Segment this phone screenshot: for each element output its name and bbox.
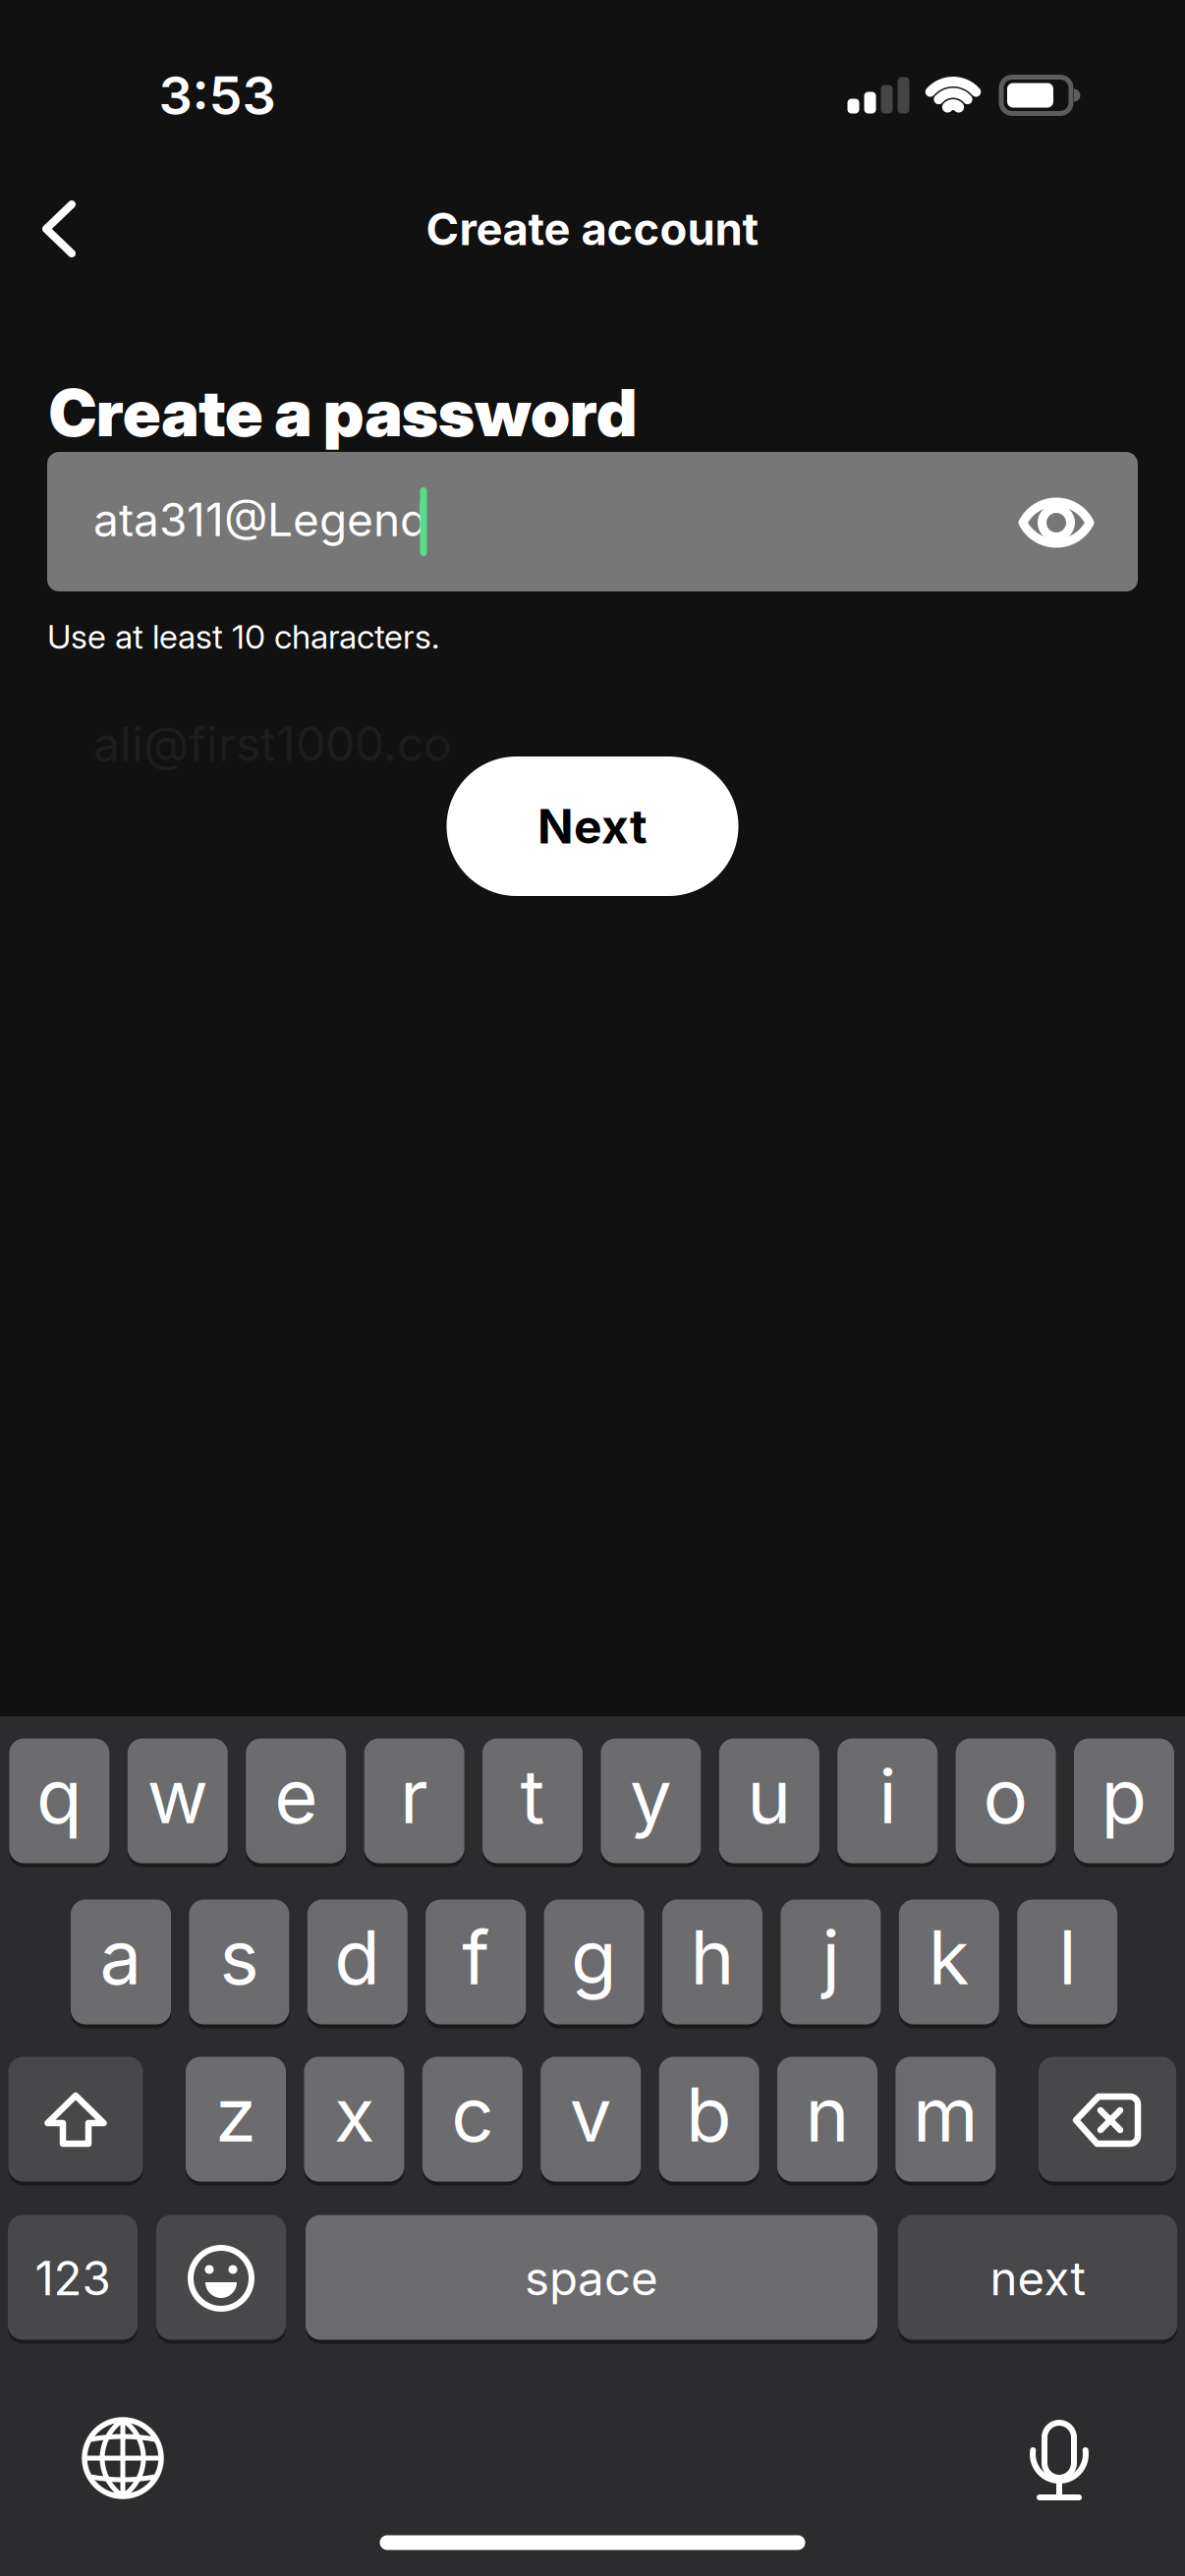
- button[interactable]: t: [482, 1738, 583, 1866]
- staticText: j: [822, 1912, 840, 2002]
- button[interactable]: b: [659, 2056, 759, 2184]
- button[interactable]: Delete: [1039, 2056, 1176, 2184]
- staticText: 123: [35, 2250, 111, 2307]
- button[interactable]: d: [307, 1899, 408, 2027]
- staticText: Next: [537, 798, 648, 855]
- button[interactable]: u: [719, 1738, 819, 1866]
- staticText: c: [451, 2069, 494, 2159]
- staticText: Create account: [426, 202, 759, 256]
- staticText: v: [570, 2069, 612, 2159]
- staticText: f: [462, 1912, 490, 2002]
- button[interactable]: z: [186, 2056, 286, 2184]
- button[interactable]: Next keyboard: [79, 2414, 167, 2502]
- button[interactable]: k: [899, 1899, 999, 2027]
- staticText: i: [879, 1751, 896, 1841]
- staticText: x: [334, 2069, 374, 2159]
- staticText: n: [805, 2069, 849, 2159]
- button[interactable]: space: [306, 2214, 877, 2342]
- staticText: ata311@Legend: [93, 492, 427, 547]
- button[interactable]: y: [601, 1738, 701, 1866]
- staticText: z: [215, 2069, 256, 2159]
- button[interactable]: e: [246, 1738, 346, 1866]
- button[interactable]: next: [898, 2214, 1177, 2342]
- button[interactable]: f: [426, 1899, 526, 2027]
- staticText: y: [630, 1751, 672, 1841]
- button[interactable]: Show password: [1012, 488, 1100, 557]
- button[interactable]: 123: [8, 2214, 138, 2342]
- button[interactable]: a: [71, 1899, 171, 2027]
- staticText: Create a password: [49, 373, 637, 452]
- staticText: next: [990, 2250, 1085, 2307]
- button[interactable]: q: [9, 1738, 109, 1866]
- button[interactable]: w: [128, 1738, 228, 1866]
- staticText: p: [1101, 1751, 1147, 1841]
- button[interactable]: j: [781, 1899, 881, 2027]
- staticText: b: [686, 2069, 732, 2159]
- button[interactable]: n: [777, 2056, 877, 2184]
- staticText: l: [1058, 1912, 1076, 2002]
- button[interactable]: Next: [447, 756, 738, 896]
- staticText: a: [100, 1912, 142, 2002]
- button[interactable]: Dictation: [1020, 2407, 1099, 2501]
- button[interactable]: l: [1017, 1899, 1117, 2027]
- staticText: m: [913, 2069, 979, 2159]
- staticText: h: [690, 1912, 734, 2002]
- staticText: Use at least 10 characters.: [47, 616, 439, 657]
- button[interactable]: c: [422, 2056, 523, 2184]
- staticText: u: [747, 1751, 791, 1841]
- button[interactable]: Password: [47, 452, 1138, 591]
- button[interactable]: p: [1074, 1738, 1174, 1866]
- button[interactable]: r: [364, 1738, 464, 1866]
- staticText: q: [36, 1751, 82, 1841]
- staticText: w: [147, 1751, 208, 1841]
- staticText: space: [525, 2250, 658, 2307]
- staticText: t: [520, 1751, 545, 1841]
- button[interactable]: i: [837, 1738, 938, 1866]
- staticText: o: [983, 1751, 1028, 1841]
- staticText: d: [334, 1912, 381, 2002]
- button[interactable]: Shift: [8, 2056, 143, 2184]
- staticText: e: [274, 1751, 318, 1841]
- button[interactable]: m: [896, 2056, 996, 2184]
- button[interactable]: g: [544, 1899, 644, 2027]
- staticText: 3:53: [159, 63, 276, 127]
- button[interactable]: s: [189, 1899, 289, 2027]
- staticText: k: [928, 1912, 970, 2002]
- button[interactable]: Back: [35, 197, 79, 260]
- button[interactable]: o: [956, 1738, 1056, 1866]
- staticText: g: [571, 1912, 617, 2002]
- button[interactable]: h: [662, 1899, 762, 2027]
- button[interactable]: x: [304, 2056, 404, 2184]
- button[interactable]: v: [541, 2056, 641, 2184]
- button[interactable]: Emoji: [156, 2214, 286, 2342]
- staticText: ali@first1000.co: [93, 715, 452, 772]
- staticText: r: [400, 1751, 429, 1841]
- staticText: s: [220, 1912, 259, 2002]
